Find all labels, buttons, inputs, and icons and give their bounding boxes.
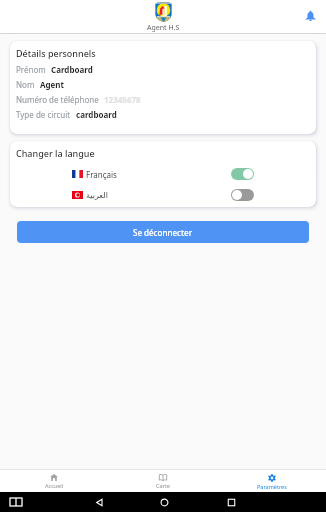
staticText: Agent (40, 79, 65, 90)
staticText: Cardboard (51, 64, 93, 75)
button[interactable]: Split screen (10, 498, 22, 506)
staticText: العربية (86, 191, 108, 200)
staticText: Français (86, 169, 117, 180)
button[interactable]: Désactivé (231, 189, 254, 201)
staticText: Carte (156, 482, 170, 489)
button[interactable]: Carte (108, 469, 217, 492)
staticText: Prénom (16, 64, 46, 75)
button[interactable]: Accueil (0, 469, 108, 492)
button[interactable]: Français (72, 168, 254, 180)
staticText: cardboard (76, 109, 117, 120)
staticText: Type de circuit (16, 109, 71, 120)
staticText: Se déconnecter (133, 227, 193, 238)
button[interactable]: Recents (227, 498, 236, 507)
staticText: Numéro de téléphone (16, 94, 99, 105)
button[interactable]: Activé (231, 168, 254, 180)
button[interactable]: العربية (72, 189, 254, 201)
staticText: 12345678 (104, 94, 141, 105)
button[interactable]: Paramètres (217, 469, 326, 492)
staticText: Agent H.S (147, 23, 180, 33)
staticText: Changer la langue (16, 147, 95, 159)
staticText: Accueil (45, 482, 64, 489)
staticText: Détails personnels (16, 47, 96, 59)
staticText: Nom (16, 79, 35, 90)
button[interactable]: Se déconnecter (17, 221, 309, 243)
button[interactable]: Home (160, 498, 169, 507)
button[interactable]: Back (95, 498, 104, 507)
button[interactable]: Notifications (305, 11, 316, 22)
staticText: Paramètres (257, 483, 287, 490)
